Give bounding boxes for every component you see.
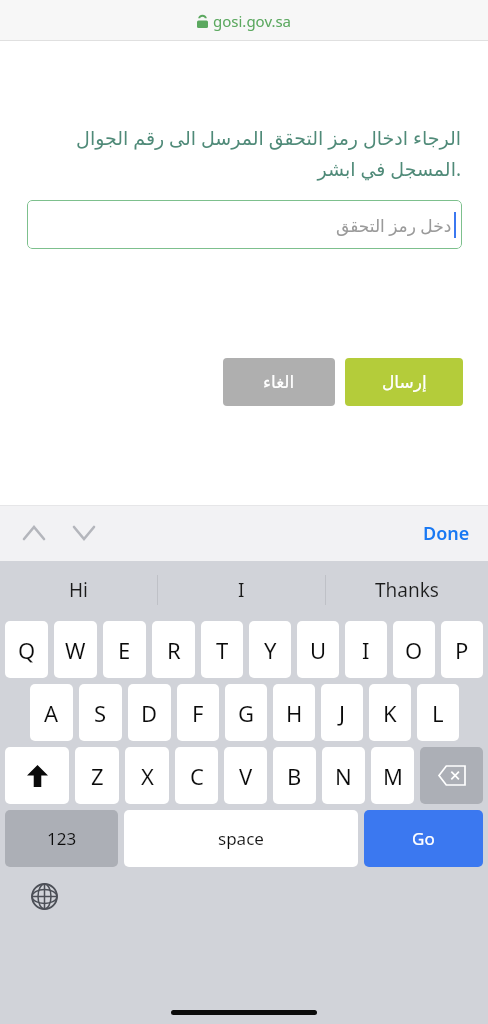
staticText: space xyxy=(218,827,264,850)
button[interactable]: Thanks xyxy=(326,561,488,618)
button[interactable]: D xyxy=(128,684,171,741)
button[interactable]: N xyxy=(322,747,365,804)
button[interactable]: I xyxy=(158,561,325,618)
staticText: I xyxy=(362,635,370,665)
button[interactable]: Next field xyxy=(66,515,102,551)
button[interactable]: C xyxy=(175,747,218,804)
button[interactable]: V xyxy=(224,747,267,804)
staticText: J xyxy=(339,698,346,728)
staticText: gosi.gov.sa xyxy=(213,11,292,31)
staticText: N xyxy=(335,761,352,791)
button[interactable]: X xyxy=(125,747,169,804)
button[interactable]: دخل رمز التحقق xyxy=(27,200,462,249)
button[interactable]: 123 xyxy=(5,810,118,867)
staticText: O xyxy=(405,635,423,665)
staticText: L xyxy=(432,698,444,728)
staticText: Z xyxy=(91,761,104,791)
staticText: I xyxy=(238,577,245,603)
staticText: Go xyxy=(412,827,435,850)
button[interactable]: I xyxy=(345,621,387,678)
staticText: T xyxy=(216,635,229,665)
staticText: F xyxy=(192,698,204,728)
staticText: P xyxy=(455,635,469,665)
button[interactable]: L xyxy=(417,684,459,741)
button[interactable]: W xyxy=(54,621,97,678)
staticText: G xyxy=(238,698,255,728)
staticText: X xyxy=(141,761,154,791)
button[interactable]: S xyxy=(79,684,122,741)
staticText: إرسال xyxy=(382,372,427,392)
button[interactable]: Y xyxy=(249,621,291,678)
staticText: الرجاء ادخال رمز التحقق المرسل الى رقم ا… xyxy=(27,125,461,181)
button[interactable]: H xyxy=(273,684,315,741)
staticText: W xyxy=(65,635,86,665)
button[interactable]: Go xyxy=(364,810,483,867)
button[interactable]: K xyxy=(369,684,411,741)
button[interactable]: Done xyxy=(405,511,488,556)
button[interactable]: O xyxy=(393,621,435,678)
staticText: K xyxy=(383,698,397,728)
button[interactable]: Z xyxy=(75,747,119,804)
button[interactable]: Change keyboard language xyxy=(24,876,64,916)
staticText: Q xyxy=(18,635,36,665)
button[interactable]: Shift xyxy=(5,747,69,804)
staticText: A xyxy=(44,698,59,728)
button[interactable]: J xyxy=(321,684,363,741)
button[interactable]: M xyxy=(371,747,414,804)
button[interactable]: Previous field xyxy=(16,515,52,551)
button[interactable]: U xyxy=(297,621,339,678)
staticText: U xyxy=(310,635,327,665)
button[interactable]: G xyxy=(225,684,267,741)
staticText: Thanks xyxy=(375,577,439,603)
button[interactable]: F xyxy=(177,684,219,741)
staticText: R xyxy=(167,635,181,665)
staticText: دخل رمز التحقق xyxy=(336,214,452,237)
button[interactable]: Hi xyxy=(0,561,157,618)
staticText: Y xyxy=(264,635,277,665)
button[interactable]: T xyxy=(201,621,243,678)
button[interactable]: R xyxy=(152,621,195,678)
button[interactable]: Q xyxy=(5,621,48,678)
staticText: D xyxy=(141,698,158,728)
staticText: C xyxy=(190,761,204,791)
button[interactable]: E xyxy=(103,621,146,678)
button[interactable]: Backspace xyxy=(420,747,483,804)
button[interactable]: إرسال xyxy=(345,358,463,406)
button[interactable]: space xyxy=(124,810,358,867)
button[interactable]: B xyxy=(273,747,316,804)
staticText: الغاء xyxy=(263,372,295,392)
staticText: S xyxy=(94,698,107,728)
staticText: 123 xyxy=(47,827,77,850)
staticText: E xyxy=(118,635,131,665)
button[interactable]: P xyxy=(441,621,483,678)
staticText: Done xyxy=(423,521,470,546)
button[interactable]: A xyxy=(30,684,73,741)
button[interactable]: الغاء xyxy=(223,358,335,406)
staticText: M xyxy=(383,761,403,791)
staticText: Hi xyxy=(69,577,88,603)
staticText: H xyxy=(286,698,303,728)
staticText: V xyxy=(239,761,253,791)
staticText: B xyxy=(287,761,302,791)
